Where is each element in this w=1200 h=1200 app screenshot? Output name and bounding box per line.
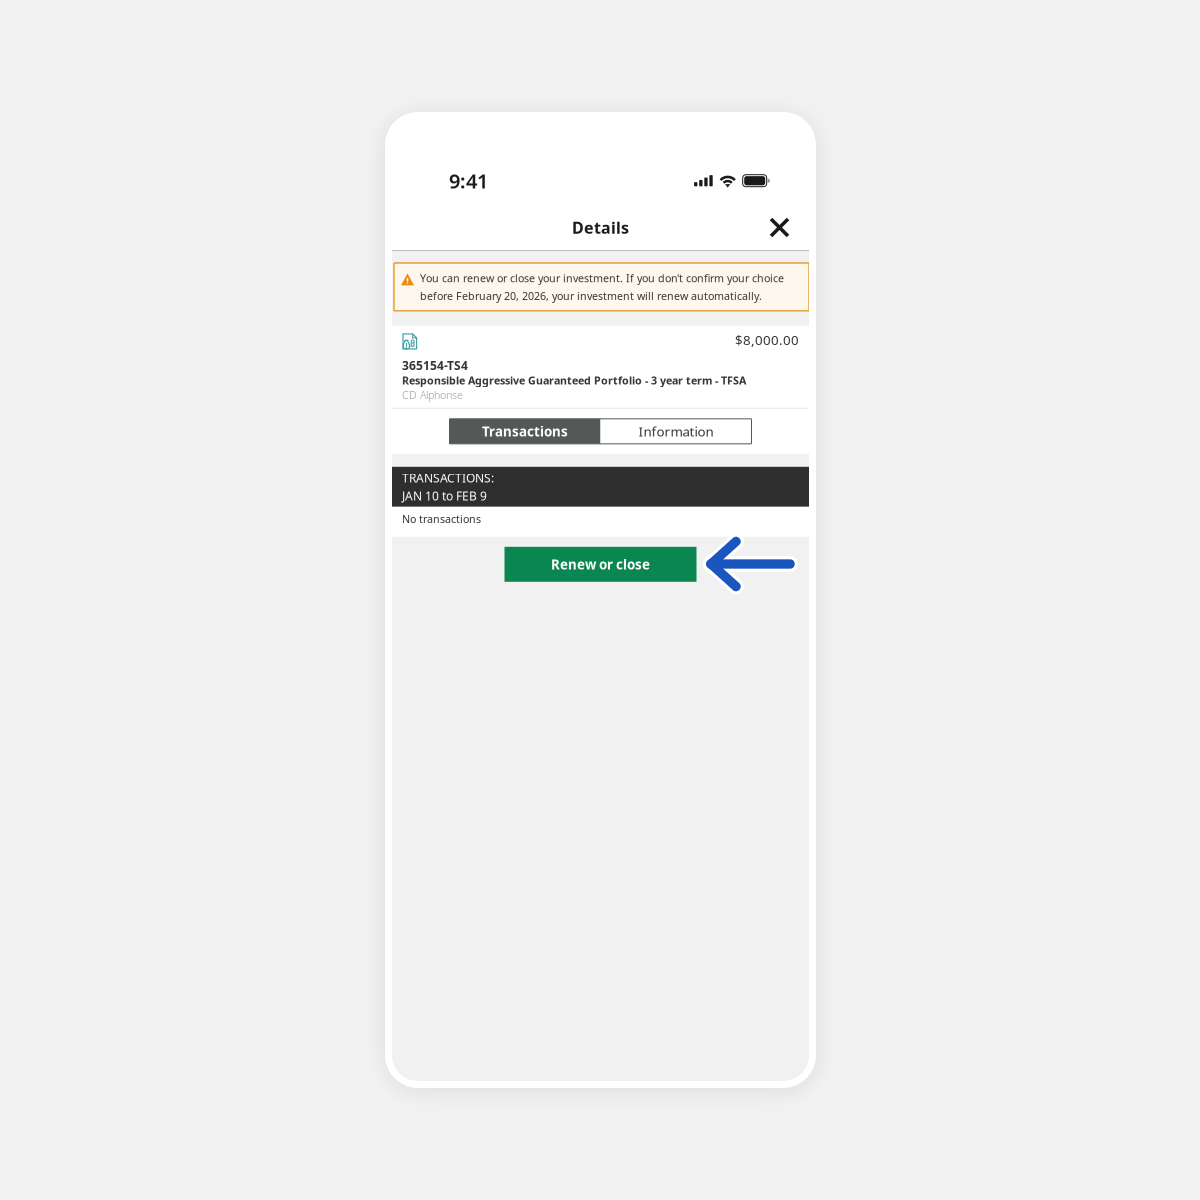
button[interactable]: Renew or close (504, 547, 696, 582)
staticText: 9:41 (449, 167, 488, 194)
staticText: No transactions (402, 512, 481, 526)
button[interactable]: Information (600, 419, 751, 444)
staticText: CD Alphonse (402, 388, 463, 402)
staticText: Information (638, 422, 713, 440)
button[interactable]: Close (764, 212, 795, 243)
staticText: before February 20, 2026, your investmen… (420, 289, 762, 303)
staticText: JAN 10 to FEB 9 (402, 488, 487, 504)
staticText: You can renew or close your investment. … (420, 271, 784, 285)
staticText: $8,000.00 (735, 331, 799, 349)
staticText: Responsible Aggressive Guaranteed Portfo… (402, 373, 746, 387)
button[interactable]: Transactions (449, 419, 600, 444)
staticText: Details (572, 217, 629, 238)
staticText: Transactions (482, 422, 568, 440)
staticText: Renew or close (551, 555, 650, 573)
staticText: 365154-TS4 (402, 357, 468, 373)
staticText: TRANSACTIONS: (402, 470, 494, 486)
